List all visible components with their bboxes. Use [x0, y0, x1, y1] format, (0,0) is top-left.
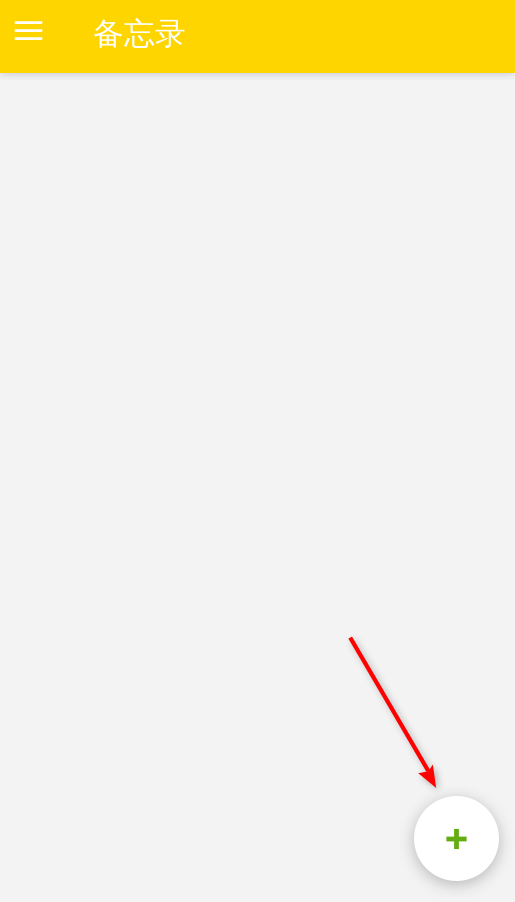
- button[interactable]: 新建备忘录: [414, 796, 499, 881]
- button[interactable]: 菜单: [0, 2, 56, 58]
- staticText: 备忘录: [93, 15, 186, 53]
